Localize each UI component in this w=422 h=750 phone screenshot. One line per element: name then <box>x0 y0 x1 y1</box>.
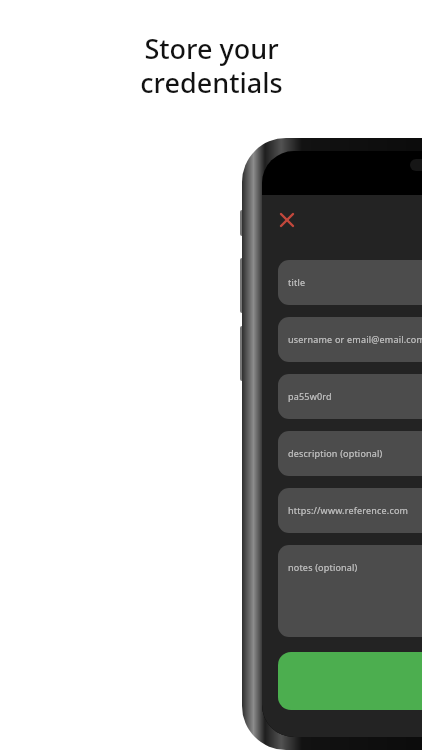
button[interactable]: Save credentials <box>278 652 422 710</box>
staticText: title <box>288 276 306 288</box>
button[interactable]: description (optional) <box>278 431 422 476</box>
button[interactable]: https://www.reference.com <box>278 488 422 533</box>
button[interactable]: notes (optional) <box>278 545 422 637</box>
staticText: username or email@email.com <box>288 333 422 345</box>
staticText: https://www.reference.com <box>288 504 409 516</box>
button[interactable]: Close <box>270 203 304 237</box>
staticText: Store your credentials <box>140 30 283 101</box>
button[interactable]: username or email@email.com <box>278 317 422 362</box>
staticText: description (optional) <box>288 447 383 459</box>
button[interactable]: title <box>278 260 422 305</box>
staticText: pa55w0rd <box>288 390 332 402</box>
staticText: notes (optional) <box>288 561 358 573</box>
button[interactable]: pa55w0rd <box>278 374 422 419</box>
